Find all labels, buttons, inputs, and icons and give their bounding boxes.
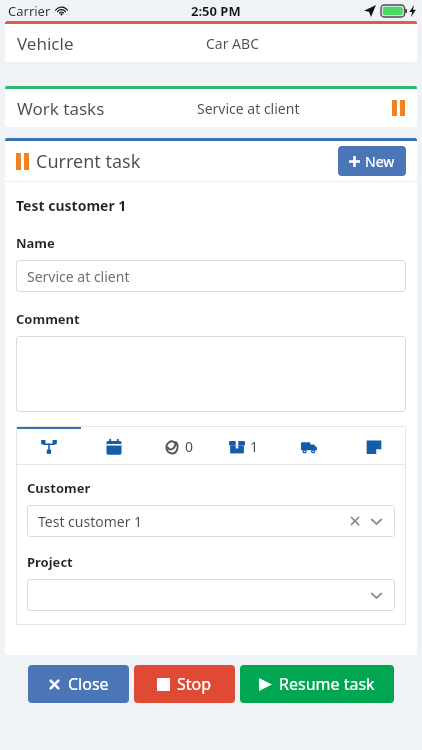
staticText: Stop [177,673,212,695]
button[interactable]: Work tasks [5,86,417,127]
staticText: Service at client [27,267,395,286]
staticText: 1 [250,437,259,456]
staticText: Car ABC [206,34,260,53]
staticText: Work tasks [17,97,105,120]
button[interactable]: Stop [134,665,235,703]
staticText: New [365,152,395,171]
button[interactable]: Calendar [81,426,146,464]
button[interactable]: Materials [211,426,276,464]
staticText: Comment [16,310,80,328]
staticText: 0 [185,437,194,456]
button[interactable]: Task details [16,426,81,464]
button[interactable]: Resume task [240,665,394,703]
button[interactable]: Close [28,665,129,703]
staticText: Test customer 1 [38,512,349,531]
button[interactable] [27,579,395,611]
button[interactable]: Service at client [16,260,406,292]
staticText: Service at client [197,99,300,118]
button[interactable]: New [338,146,406,176]
staticText: Test customer 1 [16,196,127,215]
staticText: Carrier [8,2,51,20]
button[interactable]: Notes [341,426,406,464]
button[interactable]: Attachments [146,426,211,464]
staticText: Project [27,553,73,571]
staticText: Resume task [279,673,375,695]
staticText: Close [68,673,109,695]
staticText: Customer [27,479,91,497]
staticText: Vehicle [17,32,74,55]
staticText: Current task [36,149,141,174]
button[interactable]: Vehicle [5,21,417,62]
staticText: Name [16,234,55,252]
button[interactable]: Test customer 1 [27,505,395,537]
button[interactable] [16,336,406,412]
staticText: 2:50 PM [191,2,241,20]
button[interactable]: Transport [276,426,341,464]
